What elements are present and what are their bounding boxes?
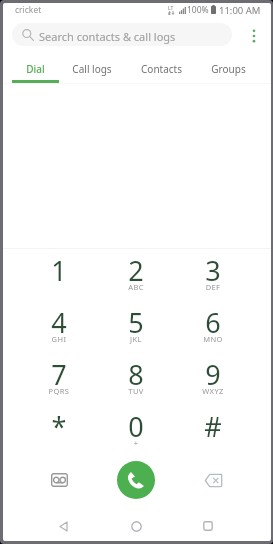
staticText: # xyxy=(175,408,251,445)
staticText: Dial xyxy=(26,62,45,76)
button[interactable]: 9 xyxy=(175,350,251,402)
button[interactable]: 5 xyxy=(98,298,174,350)
button[interactable]: 3 xyxy=(175,246,251,298)
button[interactable]: Recents xyxy=(190,512,226,540)
button[interactable]: # xyxy=(175,402,251,454)
button[interactable]: Search contacts & call logs xyxy=(12,23,232,46)
staticText: ABC xyxy=(98,282,174,292)
staticText: JKL xyxy=(98,334,174,344)
staticText: 100% xyxy=(187,4,209,16)
staticText: LTE xyxy=(168,5,175,15)
staticText: 3 xyxy=(175,252,251,289)
button[interactable]: Groups xyxy=(197,55,260,85)
staticText: WXYZ xyxy=(175,386,251,396)
button[interactable]: Dial xyxy=(12,55,59,85)
staticText: PQRS xyxy=(21,386,97,396)
button[interactable]: Backspace xyxy=(189,460,237,500)
staticText: MNO xyxy=(175,334,251,344)
staticText: Search contacts & call logs xyxy=(39,29,176,44)
button[interactable]: 4 xyxy=(21,298,97,350)
button[interactable]: Back xyxy=(45,512,81,540)
staticText: 0 xyxy=(98,408,174,445)
button[interactable]: 1 xyxy=(21,246,97,298)
staticText: cricket xyxy=(15,4,42,16)
staticText: GHI xyxy=(21,334,97,344)
staticText: 11:00 AM xyxy=(219,4,261,17)
button[interactable]: Contacts xyxy=(125,55,197,85)
staticText: Contacts xyxy=(141,62,182,76)
button[interactable]: Home xyxy=(118,512,154,540)
button[interactable]: 0 xyxy=(98,402,174,454)
staticText: 2 xyxy=(98,252,174,289)
button[interactable]: 2 xyxy=(98,246,174,298)
staticText: Groups xyxy=(211,62,246,76)
button[interactable]: 7 xyxy=(21,350,97,402)
button[interactable]: * xyxy=(21,402,97,454)
staticText: TUV xyxy=(98,386,174,396)
staticText: 4 xyxy=(21,304,97,341)
button[interactable]: More options xyxy=(242,24,266,48)
staticText: 9 xyxy=(175,356,251,393)
button[interactable]: 6 xyxy=(175,298,251,350)
button[interactable]: 8 xyxy=(98,350,174,402)
staticText: 6 xyxy=(175,304,251,341)
button[interactable]: Call xyxy=(117,461,155,499)
staticText: 5 xyxy=(98,304,174,341)
staticText: 8 xyxy=(98,356,174,393)
staticText: 1 xyxy=(21,252,97,289)
staticText: DEF xyxy=(175,282,251,292)
staticText: * xyxy=(21,408,97,445)
button[interactable]: Voicemail xyxy=(35,460,83,500)
staticText: Call logs xyxy=(72,62,112,76)
button[interactable]: Call logs xyxy=(58,55,125,85)
staticText: + xyxy=(98,438,174,448)
staticText: 7 xyxy=(21,356,97,393)
